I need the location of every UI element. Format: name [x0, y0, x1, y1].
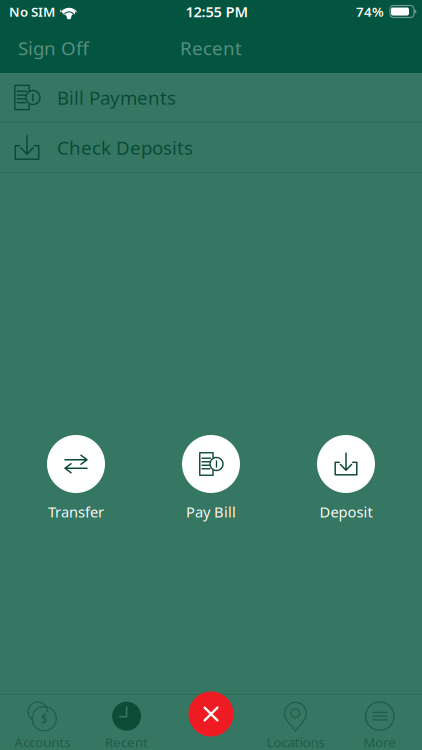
staticText: Pay Bill [186, 502, 236, 521]
button[interactable]: Deposit [317, 435, 375, 521]
button[interactable]: Recent [84, 695, 169, 750]
staticText: More [363, 733, 396, 750]
staticText: Bill Payments [57, 85, 176, 110]
staticText: No SIM [9, 3, 55, 20]
staticText: Recent [180, 36, 242, 60]
button[interactable]: More [338, 695, 422, 750]
button[interactable]: Locations [253, 695, 338, 750]
staticText: Recent [105, 733, 148, 750]
button[interactable]: Check Deposits [0, 123, 422, 173]
staticText: Deposit [319, 502, 372, 521]
staticText: Accounts [14, 733, 70, 750]
button[interactable]: Accounts [0, 695, 84, 750]
staticText: 74% [356, 3, 384, 20]
staticText: Check Deposits [57, 135, 193, 160]
staticText: Transfer [48, 502, 104, 521]
button[interactable]: Pay Bill [182, 435, 240, 521]
button[interactable]: Transfer [47, 435, 105, 521]
button[interactable]: Sign Off [0, 26, 107, 70]
staticText: Locations [266, 733, 324, 750]
button[interactable]: Close [182, 685, 240, 743]
staticText: 12:55 PM [185, 2, 248, 21]
button[interactable]: Bill Payments [0, 73, 422, 123]
staticText: Sign Off [18, 36, 89, 60]
